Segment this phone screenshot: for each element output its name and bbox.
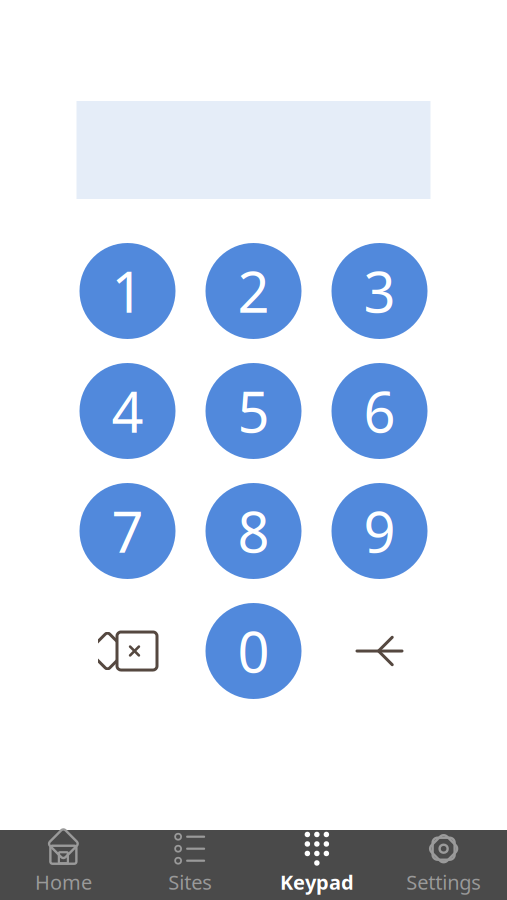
button[interactable]: Submit <box>331 603 427 699</box>
staticText: Keypad <box>280 869 354 895</box>
staticText: 4 <box>111 374 143 448</box>
staticText: Settings <box>406 869 481 895</box>
button[interactable]: 7 <box>79 483 175 579</box>
staticText: 3 <box>363 254 395 328</box>
button[interactable]: 1 <box>79 243 175 339</box>
button[interactable]: 4 <box>79 363 175 459</box>
staticText: 9 <box>363 494 395 568</box>
staticText: 1 <box>111 254 143 328</box>
staticText: 2 <box>237 254 269 328</box>
staticText: 8 <box>237 494 269 568</box>
button[interactable]: 8 <box>205 483 301 579</box>
button[interactable]: Keypad <box>253 830 380 900</box>
staticText: 7 <box>111 494 143 568</box>
button[interactable]: Settings <box>380 830 507 900</box>
button[interactable]: Home <box>0 830 127 900</box>
button[interactable]: 9 <box>331 483 427 579</box>
button[interactable]: 2 <box>205 243 301 339</box>
button[interactable]: 0 <box>205 603 301 699</box>
staticText: Sites <box>168 869 212 895</box>
button[interactable]: 3 <box>331 243 427 339</box>
button[interactable]: 5 <box>205 363 301 459</box>
staticText: Home <box>35 869 92 895</box>
staticText: 5 <box>237 374 269 448</box>
staticText: 0 <box>237 614 269 688</box>
button[interactable]: Delete <box>79 603 175 699</box>
staticText: 6 <box>363 374 395 448</box>
button[interactable]: Sites <box>127 830 254 900</box>
button[interactable]: 6 <box>331 363 427 459</box>
